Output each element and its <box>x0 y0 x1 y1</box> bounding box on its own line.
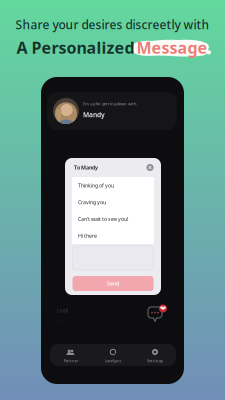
button[interactable]: Partner <box>50 344 92 366</box>
button[interactable]: I'm up for getting down with <box>47 92 177 130</box>
staticText: • • • <box>57 319 65 324</box>
staticText: To Mandy <box>74 164 98 171</box>
button[interactable]: Hi there <box>72 227 154 244</box>
staticText: Mandy <box>83 110 105 119</box>
staticText: Craving you <box>78 199 106 206</box>
button[interactable]: Can't wait to see you! <box>72 210 154 227</box>
button[interactable]: Settings <box>134 344 176 366</box>
button[interactable]: Messages <box>146 305 168 325</box>
button[interactable]: Close <box>146 163 154 171</box>
staticText: A Personalized <box>16 37 134 58</box>
button[interactable]: Craving you <box>72 194 154 211</box>
staticText: Share your desires discreetly with <box>15 16 209 32</box>
staticText: Until <box>57 307 68 314</box>
staticText: I'm up for getting down with <box>83 101 137 106</box>
staticText: Settings <box>147 358 163 363</box>
staticText: Thinking of you <box>78 182 114 189</box>
button[interactable]: Send <box>72 276 153 291</box>
staticText: LoveSync <box>104 358 121 363</box>
staticText: Partner <box>63 358 78 363</box>
staticText: Can't wait to see you! <box>78 215 128 222</box>
staticText: Hi there <box>78 232 97 239</box>
button[interactable]: Thinking of you <box>72 177 154 194</box>
staticText: Message <box>136 37 207 58</box>
staticText: Send <box>107 280 119 287</box>
button[interactable]: LoveSync <box>92 344 134 366</box>
